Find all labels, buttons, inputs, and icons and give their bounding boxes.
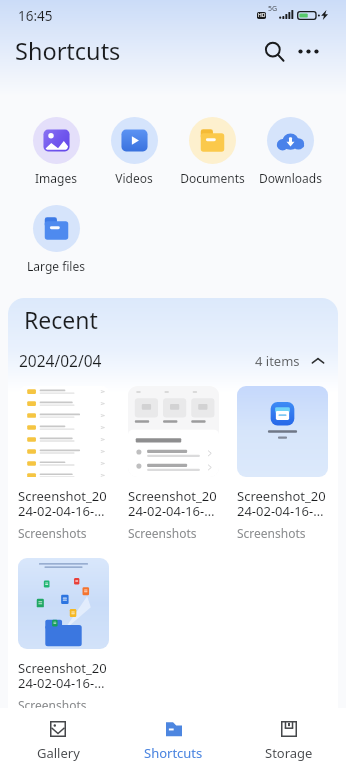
staticText: Shortcuts [15, 35, 121, 67]
staticText: Screenshots [18, 697, 87, 713]
button[interactable]: Large files [17, 205, 95, 274]
button[interactable]: Screenshot_2024-02-04-16-… [18, 558, 109, 713]
staticText: 16:45 [18, 7, 53, 25]
staticText: Screenshots [18, 525, 87, 541]
staticText: Storage [265, 744, 313, 762]
button[interactable]: Gallery [0, 708, 116, 768]
staticText: 2024/02/04 [19, 350, 102, 371]
staticText: Videos [115, 170, 153, 186]
staticText: HD [258, 12, 266, 19]
button[interactable]: Screenshot_2024-02-04-16-… [237, 386, 328, 541]
staticText: Screenshot_2024-02-04-16-… [237, 487, 328, 520]
staticText: Documents [180, 170, 245, 186]
button[interactable]: 2024/02/04 [19, 350, 325, 371]
button[interactable]: Images [17, 117, 95, 186]
staticText: Images [35, 170, 77, 186]
button[interactable]: Storage [231, 708, 346, 768]
staticText: Screenshots [128, 525, 197, 541]
button[interactable]: Search [254, 32, 294, 70]
staticText: Gallery [37, 744, 80, 762]
staticText: Downloads [259, 170, 322, 186]
button[interactable]: More options [288, 32, 328, 70]
staticText: Recent [24, 304, 98, 335]
button[interactable]: Screenshot_2024-02-04-16-… [18, 386, 110, 541]
button[interactable]: Downloads [251, 117, 329, 186]
staticText: Shortcuts [144, 744, 203, 762]
button[interactable]: Documents [173, 117, 251, 186]
button[interactable]: Shortcuts [116, 708, 231, 768]
staticText: Screenshot_2024-02-04-16-… [18, 487, 110, 520]
staticText: 5G [268, 4, 278, 14]
button[interactable]: Screenshot_2024-02-04-16-… [128, 386, 219, 541]
staticText: 4 items [255, 352, 300, 370]
staticText: Screenshot_2024-02-04-16-… [18, 659, 109, 692]
button[interactable]: Videos [95, 117, 173, 186]
staticText: Large files [27, 258, 85, 274]
staticText: Screenshots [237, 525, 306, 541]
staticText: Screenshot_2024-02-04-16-… [128, 487, 219, 520]
